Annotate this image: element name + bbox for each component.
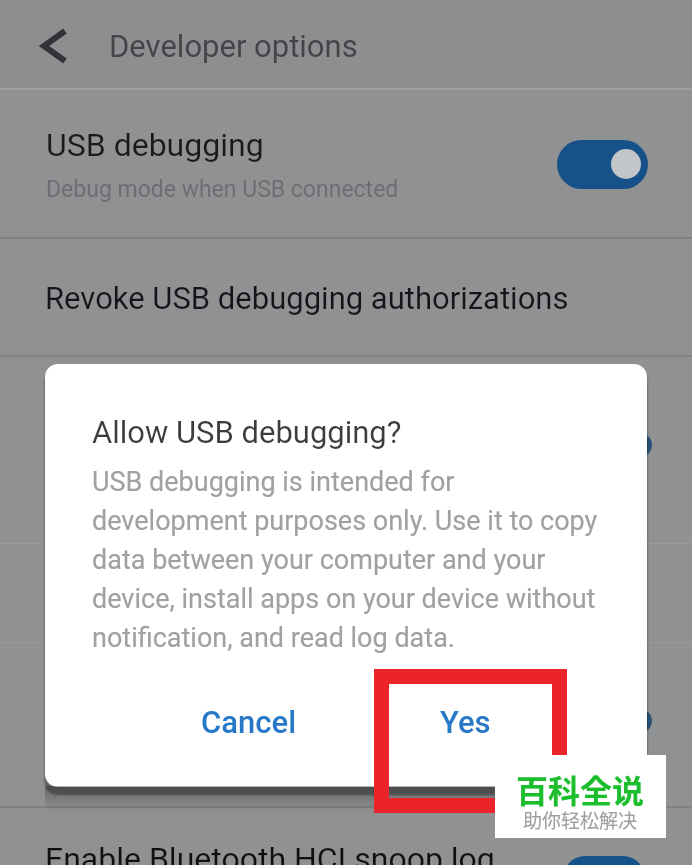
staticText: Debug mode when USB connected — [46, 176, 399, 203]
button[interactable] — [0, 90, 692, 237]
staticText: notification, and read log data. — [92, 622, 455, 654]
button[interactable]: Yes — [393, 694, 537, 750]
staticText: USB debugging — [46, 126, 264, 164]
staticText: 助你轻松解决 — [523, 806, 638, 834]
staticText: Revoke USB debugging authorizations — [45, 280, 569, 316]
button[interactable] — [28, 20, 80, 72]
staticText: USB debugging is intended for — [92, 466, 455, 498]
staticText: data between your computer and your — [92, 544, 546, 576]
staticText: Yes — [440, 704, 491, 740]
button[interactable] — [0, 239, 692, 355]
staticText: Cancel — [201, 704, 297, 740]
staticText: Developer options — [109, 28, 358, 64]
staticText: development purposes only. Use it to cop… — [92, 505, 598, 537]
staticText: device, install apps on your device with… — [92, 583, 596, 615]
button[interactable] — [0, 808, 692, 865]
staticText: Allow USB debugging? — [92, 414, 402, 450]
staticText: 百科全说 — [516, 766, 645, 812]
staticText: Enable Bluetooth HCI snoop log — [45, 840, 495, 865]
button[interactable]: Cancel — [177, 694, 321, 750]
